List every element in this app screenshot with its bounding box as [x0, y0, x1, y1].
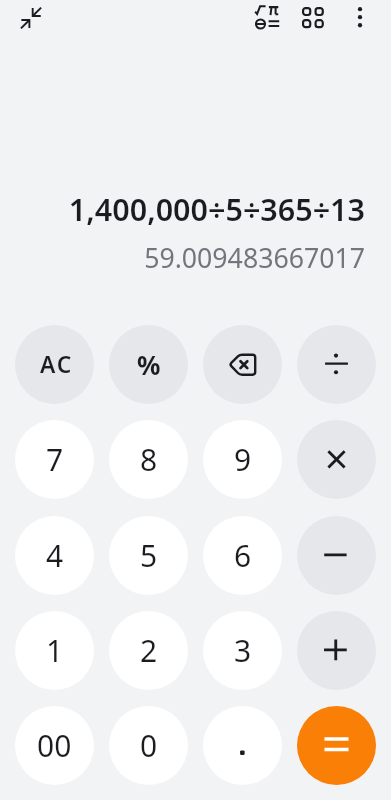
staticText: 6	[234, 535, 252, 576]
button[interactable]: Decimal point	[203, 706, 282, 785]
staticText: %	[137, 347, 161, 382]
button[interactable]: Equals	[297, 706, 376, 785]
staticText: 8	[140, 439, 158, 480]
button[interactable]: 00	[15, 706, 94, 785]
button[interactable]: 0	[109, 706, 188, 785]
staticText: 59.009483667017	[144, 239, 365, 275]
button[interactable]: Multiply	[297, 420, 376, 499]
button[interactable]: AC	[15, 325, 94, 404]
staticText: 1,400,000÷5÷365÷13	[68, 188, 365, 230]
staticText: AC	[40, 349, 74, 380]
button[interactable]: %	[109, 325, 188, 404]
staticText: 9	[234, 439, 252, 480]
staticText: 1	[46, 630, 64, 671]
button[interactable]: 7	[15, 420, 94, 499]
staticText: 00	[37, 725, 72, 766]
button[interactable]: History	[294, 0, 332, 36]
staticText: 4	[46, 535, 64, 576]
button[interactable]: 9	[203, 420, 282, 499]
button[interactable]: 6	[203, 516, 282, 595]
button[interactable]: Collapse	[12, 0, 50, 37]
button[interactable]: 3	[203, 611, 282, 690]
staticText: 5	[140, 535, 158, 576]
button[interactable]: 8	[109, 420, 188, 499]
button[interactable]: 1	[15, 611, 94, 690]
button[interactable]: 2	[109, 611, 188, 690]
button[interactable]: 5	[109, 516, 188, 595]
staticText: 3	[234, 630, 252, 671]
staticText: 2	[140, 630, 158, 671]
button[interactable]: Scientific calculator	[248, 0, 286, 36]
button[interactable]: Divide	[297, 325, 376, 404]
button[interactable]: More options	[341, 0, 379, 36]
button[interactable]: 4	[15, 516, 94, 595]
staticText: 7	[46, 439, 64, 480]
button[interactable]: Backspace	[203, 325, 282, 404]
button[interactable]: Minus	[297, 516, 376, 595]
button[interactable]: Plus	[297, 611, 376, 690]
staticText: 0	[140, 725, 158, 766]
